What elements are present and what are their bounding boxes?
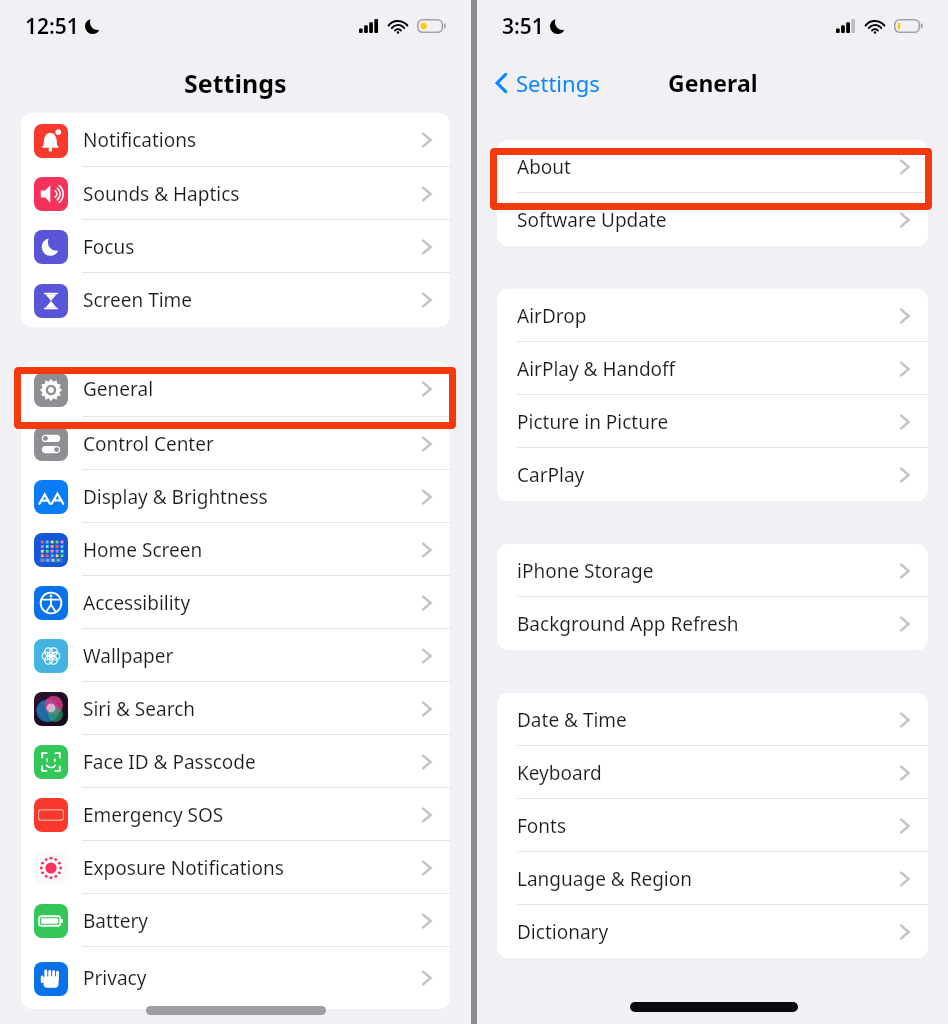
staticText: Siri & Search — [83, 696, 196, 722]
button[interactable]: Emergency SOS — [21, 788, 450, 841]
button[interactable]: Fonts — [497, 799, 928, 852]
staticText: Exposure Notifications — [83, 855, 284, 881]
button[interactable]: Siri & Search — [21, 682, 450, 735]
staticText: Accessibility — [83, 590, 191, 616]
button[interactable]: Notifications — [21, 113, 450, 167]
button[interactable]: About — [497, 140, 928, 193]
staticText: Background App Refresh — [517, 611, 739, 637]
button[interactable]: Focus — [21, 220, 450, 273]
staticText: General — [83, 376, 154, 402]
button[interactable]: Accessibility — [21, 576, 450, 629]
staticText: Software Update — [517, 207, 667, 233]
button[interactable]: Face ID & Passcode — [21, 735, 450, 788]
staticText: Wallpaper — [83, 643, 174, 669]
button[interactable]: AirPlay & Handoff — [497, 342, 928, 395]
staticText: Focus — [83, 234, 135, 260]
button[interactable]: Picture in Picture — [497, 395, 928, 448]
button[interactable]: Background App Refresh — [497, 597, 928, 650]
staticText: Fonts — [517, 813, 567, 839]
staticText: 3:51 — [502, 12, 544, 41]
button[interactable]: CarPlay — [497, 448, 928, 501]
staticText: Settings — [516, 68, 600, 98]
button[interactable]: Software Update — [497, 193, 928, 246]
staticText: General — [668, 67, 758, 98]
button[interactable]: Exposure Notifications — [21, 841, 450, 894]
staticText: CarPlay — [517, 462, 585, 488]
button[interactable]: Sounds & Haptics — [21, 167, 450, 220]
staticText: AirPlay & Handoff — [517, 356, 676, 382]
button[interactable]: Display & Brightness — [21, 470, 450, 523]
staticText: Notifications — [83, 127, 197, 153]
button[interactable]: Settings — [491, 62, 604, 104]
staticText: Picture in Picture — [517, 409, 669, 435]
staticText: Face ID & Passcode — [83, 749, 256, 775]
staticText: Date & Time — [517, 707, 627, 733]
staticText: Language & Region — [517, 866, 692, 892]
staticText: Privacy — [83, 965, 147, 991]
staticText: About — [517, 154, 571, 180]
button[interactable]: Wallpaper — [21, 629, 450, 682]
staticText: AirDrop — [517, 303, 587, 329]
button[interactable]: AirDrop — [497, 289, 928, 342]
button[interactable]: Home Screen — [21, 523, 450, 576]
button[interactable]: Date & Time — [497, 693, 928, 746]
button[interactable]: General — [21, 361, 450, 417]
button[interactable]: Control Center — [21, 417, 450, 470]
staticText: Screen Time — [83, 287, 193, 313]
staticText: Battery — [83, 908, 148, 934]
staticText: Dictionary — [517, 919, 609, 945]
staticText: Control Center — [83, 431, 214, 457]
button[interactable]: Keyboard — [497, 746, 928, 799]
button[interactable]: Language & Region — [497, 852, 928, 905]
staticText: Emergency SOS — [83, 802, 224, 828]
button[interactable]: Screen Time — [21, 273, 450, 327]
button[interactable]: iPhone Storage — [497, 544, 928, 597]
staticText: Home Screen — [83, 537, 203, 563]
staticText: 12:51 — [25, 12, 79, 41]
button[interactable]: Privacy — [21, 947, 450, 1009]
staticText: Sounds & Haptics — [83, 181, 240, 207]
button[interactable]: Dictionary — [497, 905, 928, 958]
staticText: Settings — [184, 66, 287, 100]
staticText: Display & Brightness — [83, 484, 268, 510]
staticText: iPhone Storage — [517, 558, 654, 584]
button[interactable]: Battery — [21, 894, 450, 947]
staticText: Keyboard — [517, 760, 602, 786]
